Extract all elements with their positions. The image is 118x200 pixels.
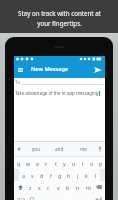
staticText: d [40,172,44,179]
staticText: a [22,172,25,179]
button[interactable]: ?123 [14,193,27,200]
button[interactable]: you [24,141,47,157]
staticText: h [67,172,71,179]
staticText: and [55,146,64,152]
staticText: v [57,184,60,191]
button[interactable]: v [53,181,63,193]
button[interactable]: z [26,181,35,193]
button[interactable]: Backspace [93,181,105,193]
button[interactable]: Keyboard settings [14,141,24,157]
staticText: i [82,160,84,167]
staticText: w [26,160,31,167]
button[interactable]: b [63,181,73,193]
staticText: New Message [31,65,69,73]
staticText: b [66,184,70,191]
button[interactable]: w [24,157,33,169]
staticText: ?123 [17,197,25,200]
staticText: Take advantage of the in-app messaging [15,90,99,96]
staticText: s [31,172,34,179]
button[interactable]: o [87,157,96,169]
button[interactable]: p [96,157,105,169]
staticText: To [15,79,21,85]
button[interactable]: c [44,181,53,193]
staticText: z [29,184,32,191]
button[interactable]: y [60,157,69,169]
button[interactable]: l [91,169,100,181]
staticText: f [50,172,52,179]
staticText: k [85,172,88,179]
staticText: r [45,160,48,167]
button[interactable]: Menu [16,65,25,74]
button[interactable]: and [47,141,71,157]
button[interactable]: h [64,169,73,181]
button[interactable]: Voice input [95,141,105,157]
button[interactable]: m [83,181,93,193]
button[interactable]: me [71,141,95,157]
button[interactable]: Shift [14,181,26,193]
button[interactable]: f [46,169,55,181]
staticText: p [99,160,103,167]
button[interactable]: x [35,181,44,193]
staticText: j [77,172,79,179]
staticText: Stay on track with content at [18,9,101,17]
button[interactable]: e [33,157,42,169]
button[interactable]: i [78,157,87,169]
button[interactable]: g [55,169,64,181]
button[interactable]: u [69,157,78,169]
button[interactable]: q [14,157,24,169]
button[interactable]: j [73,169,82,181]
button[interactable]: r [42,157,51,169]
button[interactable]: a [19,169,28,181]
staticText: q [17,160,21,167]
staticText: g [58,172,62,179]
staticText: o [90,160,94,167]
staticText: t [55,160,57,167]
button[interactable]: s [28,169,37,181]
staticText: y [63,160,66,167]
button[interactable]: Enter [92,193,105,200]
staticText: you [32,146,40,152]
staticText: l [95,172,97,179]
staticText: me [80,146,87,152]
button[interactable]: Emoji [27,193,36,200]
button[interactable]: d [37,169,46,181]
staticText: u [72,160,76,167]
button[interactable]: k [82,169,91,181]
button[interactable]: Send [92,64,103,75]
staticText: e [36,160,39,167]
staticText: m [86,184,91,191]
staticText: c [47,184,50,191]
button[interactable]: n [73,181,83,193]
staticText: x [38,184,41,191]
button[interactable]: t [51,157,60,169]
staticText: your fingertips. [37,19,82,27]
staticText: n [76,184,80,191]
